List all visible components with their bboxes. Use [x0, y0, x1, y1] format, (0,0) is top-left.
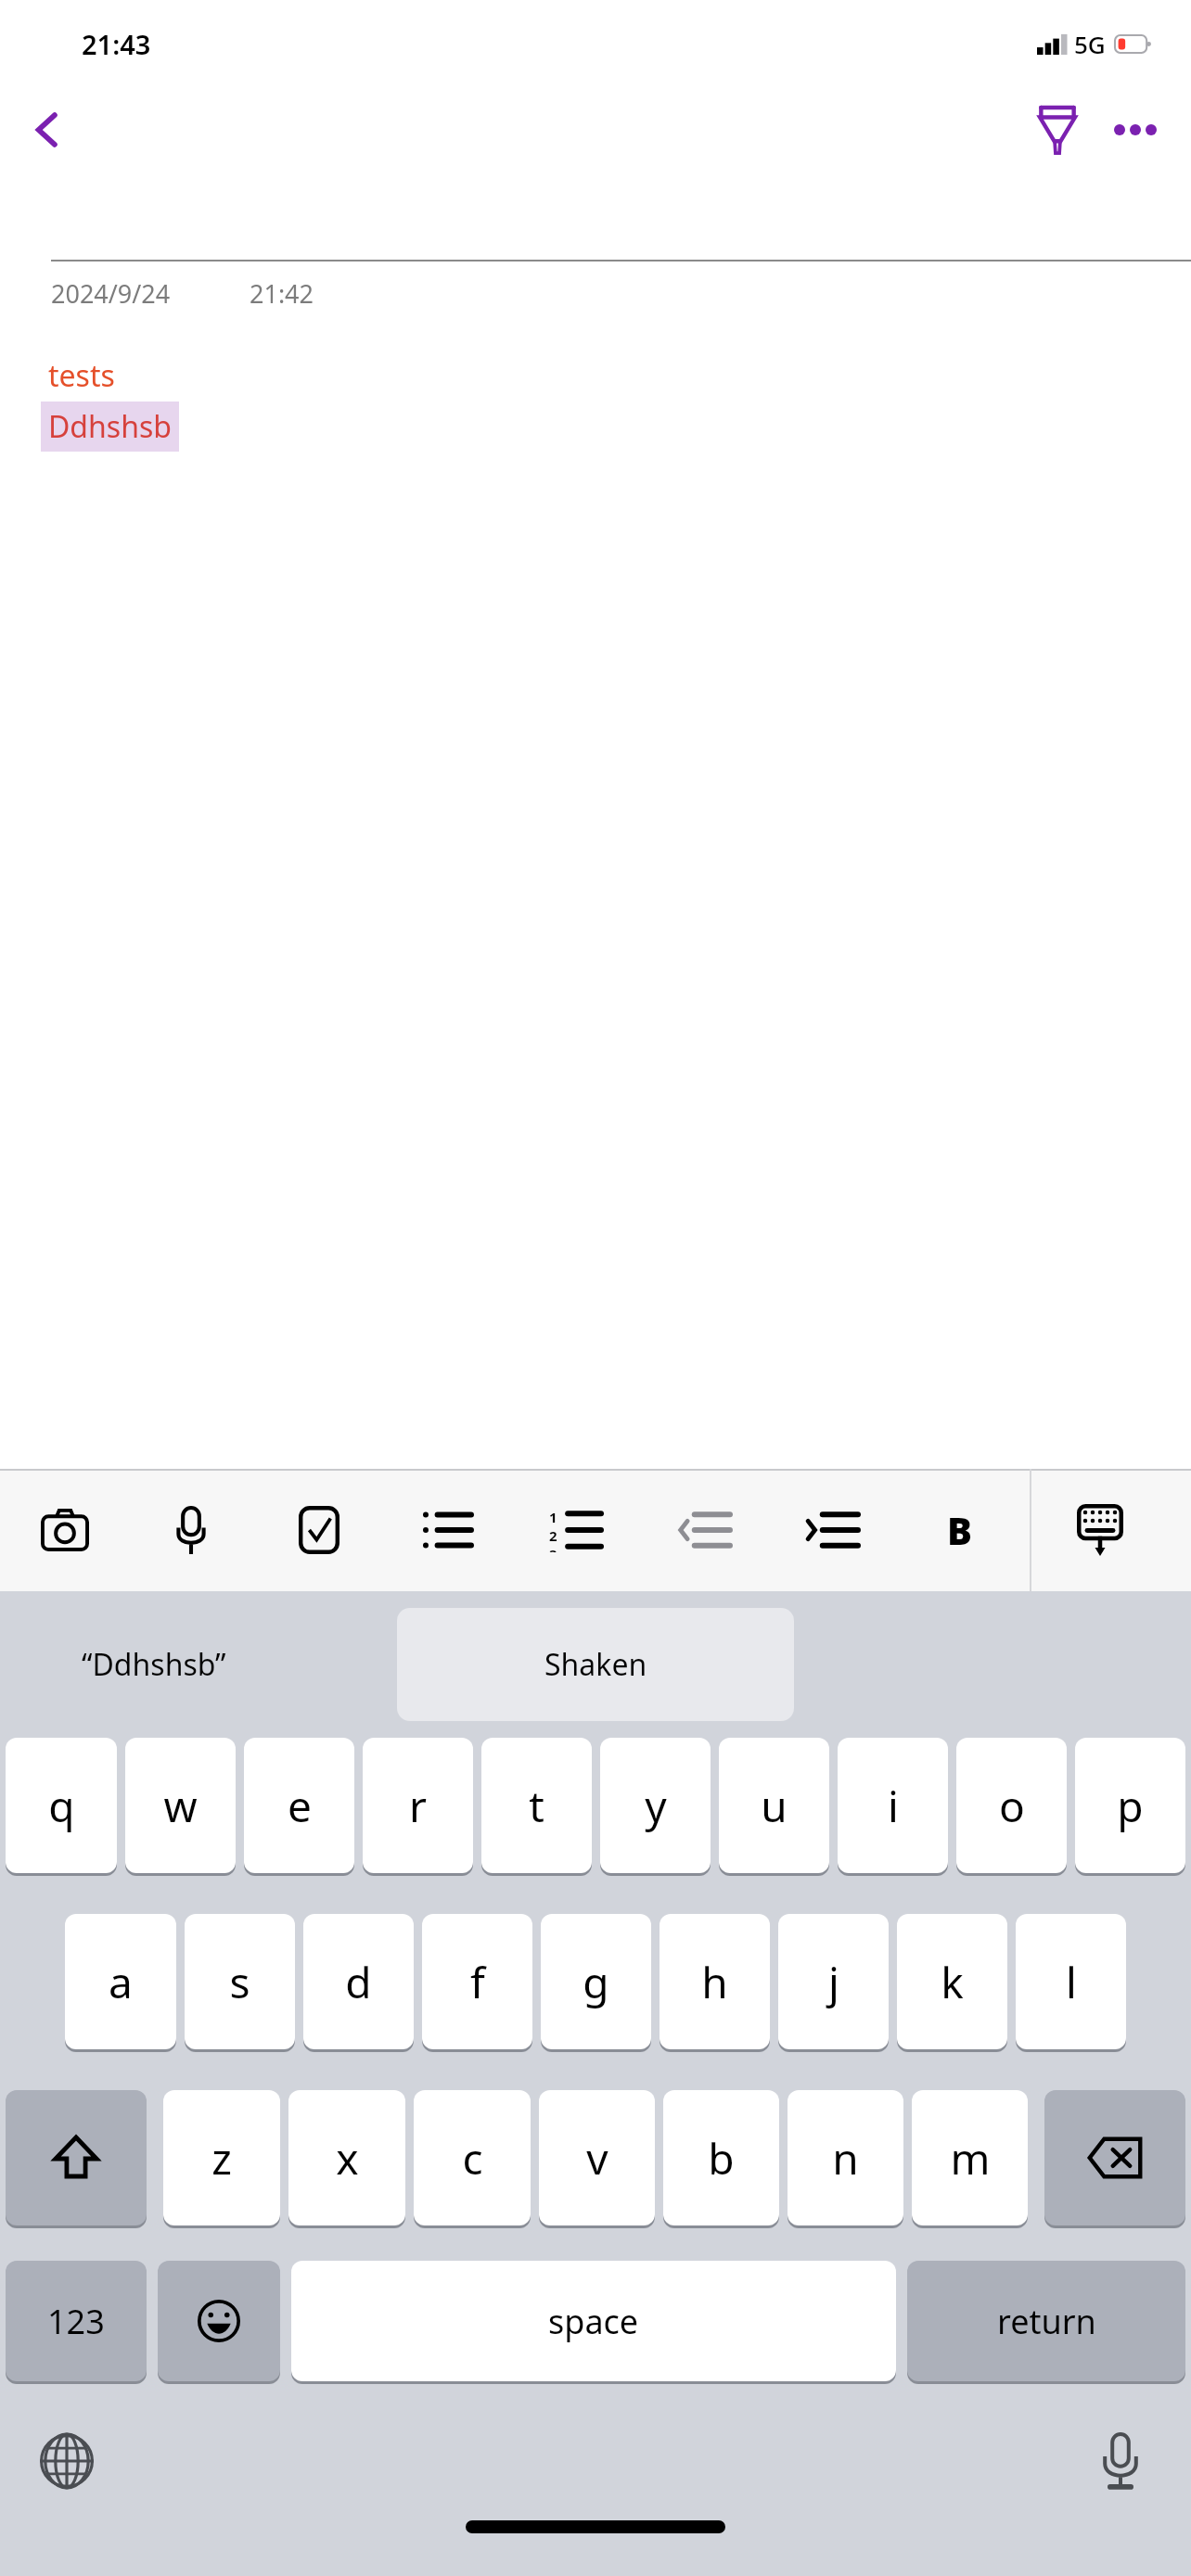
- button[interactable]: u: [719, 1738, 829, 1873]
- button[interactable]: s: [185, 1914, 295, 2049]
- staticText: n: [832, 2129, 859, 2187]
- staticText: 1: [549, 1508, 557, 1526]
- staticText: m: [950, 2129, 991, 2187]
- staticText: 5G: [1074, 28, 1106, 60]
- button[interactable]: m: [912, 2090, 1028, 2225]
- button[interactable]: Shift: [6, 2090, 147, 2225]
- staticText: k: [941, 1953, 964, 2011]
- button[interactable]: g: [541, 1914, 651, 2049]
- button[interactable]: Switch keyboard: [20, 2415, 113, 2507]
- staticText: 2024/9/24: [51, 276, 171, 311]
- button[interactable]: i: [838, 1738, 948, 1873]
- staticText: j: [828, 1953, 839, 2011]
- staticText: 2: [549, 1526, 557, 1545]
- staticText: u: [761, 1777, 788, 1835]
- staticText: s: [229, 1953, 250, 2011]
- staticText: tests: [48, 355, 115, 396]
- staticText: w: [163, 1777, 198, 1835]
- button[interactable]: Back: [11, 94, 83, 166]
- button[interactable]: Numbered list: [525, 1480, 625, 1580]
- button[interactable]: 123: [6, 2261, 147, 2381]
- button[interactable]: Increase indent: [781, 1480, 881, 1580]
- button[interactable]: l: [1016, 1914, 1126, 2049]
- button[interactable]: h: [660, 1914, 770, 2049]
- button[interactable]: w: [125, 1738, 236, 1873]
- button[interactable]: c: [414, 2090, 531, 2225]
- button[interactable]: z: [163, 2090, 280, 2225]
- button[interactable]: Hide keyboard: [1050, 1480, 1150, 1580]
- staticText: v: [586, 2129, 608, 2187]
- staticText: 21:42: [250, 276, 314, 311]
- button[interactable]: Emoji: [158, 2261, 280, 2381]
- button[interactable]: return: [907, 2261, 1185, 2381]
- staticText: z: [211, 2129, 232, 2187]
- staticText: c: [462, 2129, 483, 2187]
- staticText: 21:43: [82, 26, 151, 62]
- button[interactable]: space: [291, 2261, 896, 2381]
- button[interactable]: t: [481, 1738, 592, 1873]
- button[interactable]: Decrease indent: [653, 1480, 753, 1580]
- staticText: i: [888, 1777, 899, 1835]
- staticText: return: [997, 2299, 1096, 2344]
- button[interactable]: q: [6, 1738, 117, 1873]
- staticText: e: [288, 1777, 312, 1835]
- button[interactable]: More options: [1096, 91, 1174, 169]
- button[interactable]: Shaken: [397, 1608, 794, 1721]
- button[interactable]: e: [244, 1738, 354, 1873]
- staticText: B: [947, 1505, 972, 1555]
- staticText: h: [701, 1953, 728, 2011]
- button[interactable]: d: [303, 1914, 414, 2049]
- staticText: Shaken: [544, 1644, 647, 1685]
- button[interactable]: f: [422, 1914, 532, 2049]
- staticText: a: [109, 1953, 133, 2011]
- button[interactable]: r: [363, 1738, 473, 1873]
- button[interactable]: b: [663, 2090, 779, 2225]
- staticText: 123: [47, 2299, 105, 2344]
- staticText: space: [548, 2299, 639, 2344]
- staticText: b: [708, 2129, 735, 2187]
- staticText: o: [999, 1777, 1025, 1835]
- button[interactable]: k: [897, 1914, 1007, 2049]
- staticText: g: [583, 1953, 609, 2011]
- button[interactable]: Backspace: [1044, 2090, 1185, 2225]
- button[interactable]: n: [788, 2090, 903, 2225]
- staticText: p: [1117, 1777, 1144, 1835]
- staticText: x: [336, 2129, 359, 2187]
- staticText: r: [409, 1777, 427, 1835]
- button[interactable]: v: [539, 2090, 655, 2225]
- button[interactable]: o: [956, 1738, 1067, 1873]
- staticText: d: [345, 1953, 372, 2011]
- button[interactable]: y: [600, 1738, 711, 1873]
- button[interactable]: Bold: [909, 1480, 1009, 1580]
- staticText: 3: [549, 1545, 557, 1552]
- button[interactable]: a: [65, 1914, 176, 2049]
- staticText: Ddhshsb: [48, 406, 172, 447]
- button[interactable]: Bulleted list: [397, 1480, 497, 1580]
- button[interactable]: Voice memo: [141, 1480, 241, 1580]
- staticText: l: [1066, 1953, 1077, 2011]
- button[interactable]: Dictation: [1074, 2415, 1167, 2507]
- staticText: t: [529, 1777, 544, 1835]
- button[interactable]: “Ddhshsb”: [82, 1644, 226, 1685]
- button[interactable]: x: [288, 2090, 405, 2225]
- button[interactable]: Highlighter: [1018, 91, 1096, 169]
- button[interactable]: j: [778, 1914, 889, 2049]
- staticText: q: [48, 1777, 75, 1835]
- button[interactable]: Checklist: [269, 1480, 369, 1580]
- button[interactable]: p: [1075, 1738, 1185, 1873]
- staticText: f: [470, 1953, 485, 2011]
- staticText: y: [645, 1777, 667, 1835]
- button[interactable]: Camera: [15, 1480, 115, 1580]
